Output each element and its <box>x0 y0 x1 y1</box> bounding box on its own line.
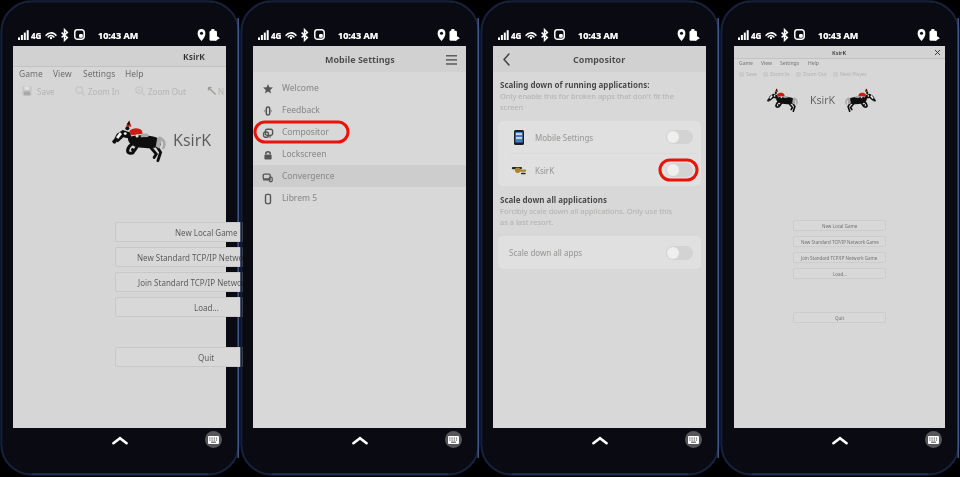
staticText: Zoom Out <box>803 71 827 78</box>
staticText: New Standard TCP/IP Network Game <box>137 252 276 263</box>
button[interactable]: Toggle <box>666 163 693 177</box>
staticText: Compositor <box>282 126 329 138</box>
staticText: Mobile Settings <box>325 53 395 65</box>
button[interactable]: Load... <box>115 297 297 317</box>
button[interactable]: Settings <box>776 60 804 67</box>
button[interactable]: Quit <box>793 312 886 323</box>
button[interactable]: Quit <box>115 347 297 367</box>
staticText: KsirK <box>832 49 847 56</box>
button[interactable]: N <box>205 82 225 100</box>
button[interactable]: Librem 5 <box>253 187 466 209</box>
staticText: Save <box>37 86 55 97</box>
staticText: Game <box>739 60 753 67</box>
button[interactable]: New Standard TCP/IP Network Game <box>115 247 297 267</box>
button[interactable]: Back <box>498 51 515 68</box>
staticText: Librem 5 <box>282 192 318 204</box>
button[interactable]: Zoom In <box>760 71 793 78</box>
button[interactable]: Welcome <box>253 77 466 99</box>
staticText: Join Standard TCP/IP Network Game <box>801 255 878 261</box>
staticText: N <box>218 86 225 97</box>
button[interactable]: Zoom Out <box>793 71 830 78</box>
staticText: Zoom In <box>770 71 790 78</box>
staticText: 10:43 AM <box>818 29 859 41</box>
staticText: 10:43 AM <box>338 29 379 41</box>
button[interactable]: Back <box>109 432 131 450</box>
staticText: Lockscreen <box>282 148 327 160</box>
staticText: Zoom In <box>88 86 120 97</box>
staticText: Zoom Out <box>148 86 186 97</box>
button[interactable]: Back <box>829 432 851 450</box>
staticText: 4G <box>511 30 522 41</box>
button[interactable]: KsirK <box>498 154 701 186</box>
staticText: New Local Game <box>175 227 238 238</box>
staticText: Help <box>125 68 144 80</box>
staticText: Feedback <box>282 104 320 116</box>
staticText: Quit <box>198 352 215 363</box>
button[interactable]: Join Standard TCP/IP Network Game <box>793 252 886 263</box>
staticText: Settings <box>780 60 800 67</box>
button[interactable]: Help <box>804 60 823 67</box>
staticText: KsirK <box>183 51 205 63</box>
staticText: New Local Game <box>822 223 858 229</box>
staticText: KsirK <box>535 165 555 176</box>
staticText: Scaling down of running applications: <box>500 79 650 90</box>
staticText: Join Standard TCP/IP Network Game <box>138 277 274 288</box>
button[interactable]: Zoom Out <box>133 82 186 100</box>
button[interactable]: Keyboard <box>445 431 462 448</box>
button[interactable]: New Local Game <box>115 222 297 242</box>
button[interactable]: Back <box>589 432 611 450</box>
button[interactable]: Save <box>20 82 55 100</box>
staticText: Scale down all apps <box>509 247 583 258</box>
staticText: Compositor <box>573 53 626 65</box>
button[interactable]: Settings <box>79 66 120 81</box>
staticText: Convergence <box>282 170 335 182</box>
button[interactable]: View <box>49 66 76 81</box>
button[interactable]: Save <box>736 71 760 78</box>
button[interactable]: Lockscreen <box>253 143 466 165</box>
staticText: Quit <box>835 315 845 321</box>
button[interactable]: New Local Game <box>793 220 886 231</box>
staticText: 10:43 AM <box>98 29 139 41</box>
staticText: 4G <box>31 30 42 41</box>
button[interactable]: Toggle <box>666 130 693 144</box>
staticText: Settings <box>83 68 116 80</box>
staticText: View <box>53 68 72 80</box>
button[interactable]: Game <box>735 60 757 67</box>
button[interactable]: Convergence <box>253 165 466 187</box>
button[interactable]: Join Standard TCP/IP Network Game <box>115 272 297 292</box>
button[interactable]: Keyboard <box>205 431 222 448</box>
staticText: View <box>761 60 772 67</box>
staticText: New Standard TCP/IP Network Game <box>801 239 879 245</box>
staticText: KsirK <box>810 93 836 107</box>
button[interactable]: Menu <box>443 51 460 68</box>
button[interactable]: Compositor <box>253 121 466 143</box>
button[interactable]: Keyboard <box>685 431 702 448</box>
staticText: 10:43 AM <box>578 29 619 41</box>
button[interactable]: Keyboard <box>925 431 942 448</box>
button[interactable]: Back <box>349 432 371 450</box>
button[interactable]: Toggle <box>666 246 693 260</box>
button[interactable]: View <box>757 60 776 67</box>
button[interactable]: Game <box>15 66 47 81</box>
staticText: Load... <box>194 302 219 313</box>
button[interactable]: Scale down all apps <box>498 236 701 269</box>
staticText: Forcibly scale down all applications. On… <box>500 206 673 227</box>
staticText: Help <box>808 60 819 67</box>
button[interactable]: Zoom In <box>73 82 120 100</box>
button[interactable]: Close <box>933 48 942 57</box>
staticText: 4G <box>271 30 282 41</box>
staticText: Load... <box>833 271 847 277</box>
button[interactable]: New Standard TCP/IP Network Game <box>793 236 886 247</box>
button[interactable]: Next Player <box>830 71 870 78</box>
staticText: 4G <box>751 30 762 41</box>
staticText: Welcome <box>282 82 319 94</box>
staticText: Mobile Settings <box>535 132 594 143</box>
button[interactable]: Load... <box>793 268 886 279</box>
staticText: Next Player <box>840 71 867 78</box>
button[interactable]: Mobile Settings <box>498 121 701 153</box>
staticText: Game <box>19 68 43 80</box>
staticText: Only enable this for broken apps that do… <box>500 91 674 112</box>
button[interactable]: Help <box>121 66 148 81</box>
button[interactable]: Feedback <box>253 99 466 121</box>
staticText: Scale down all applications <box>500 194 607 205</box>
